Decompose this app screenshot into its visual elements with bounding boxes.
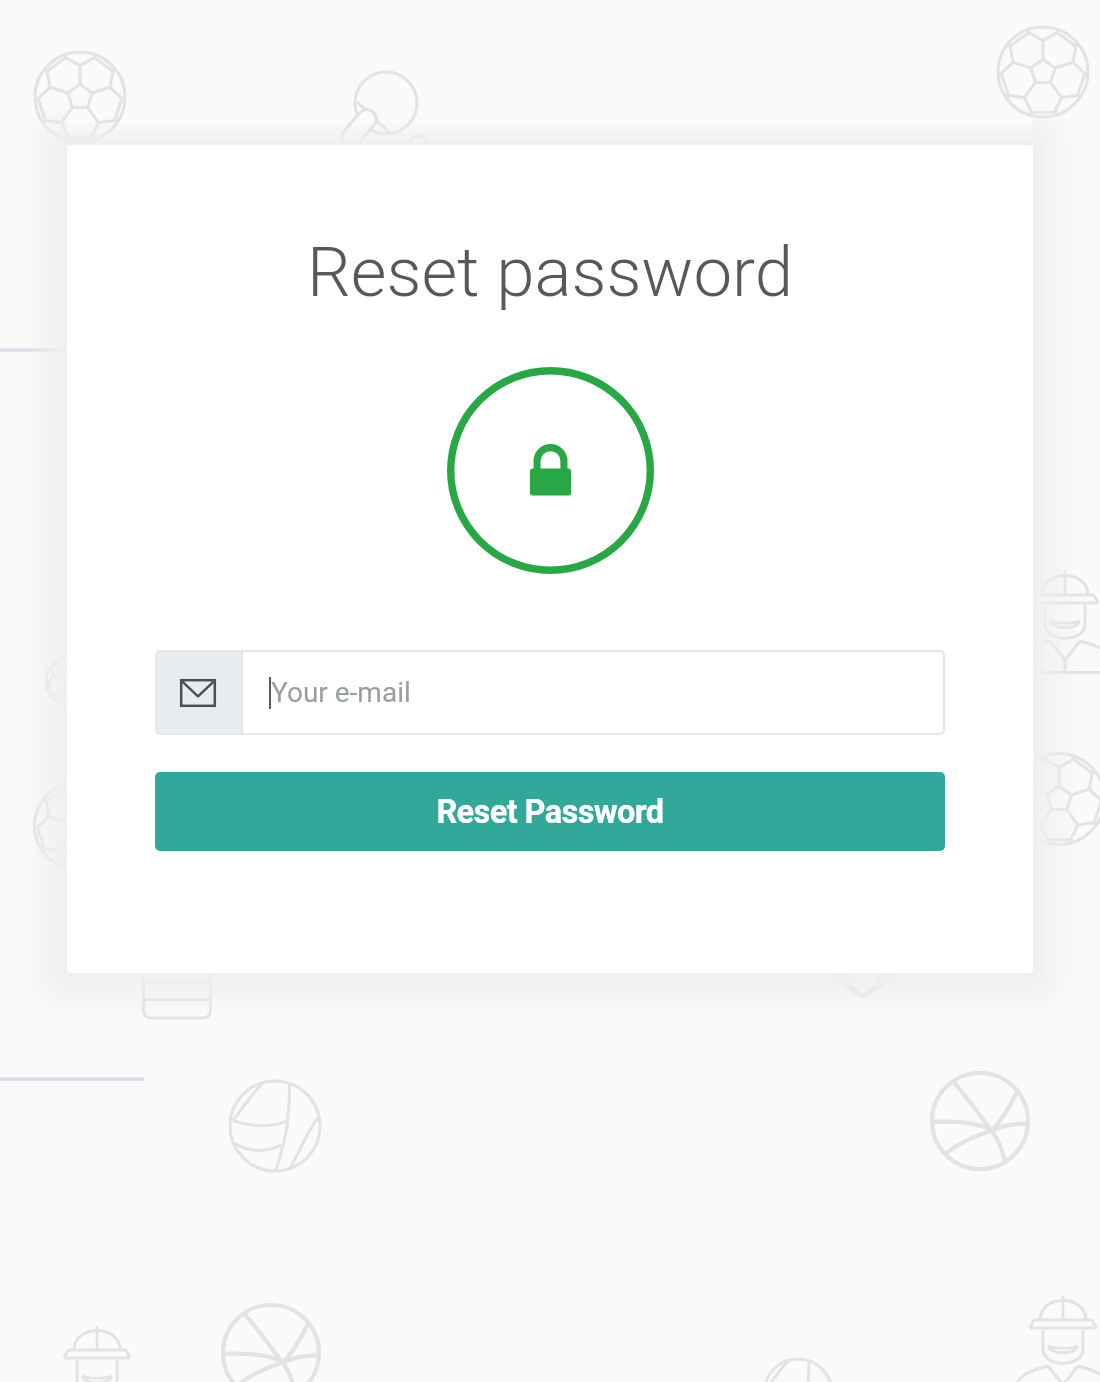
staticText: Your e-mail bbox=[271, 676, 411, 709]
button[interactable]: Reset Password bbox=[155, 772, 945, 851]
staticText: Reset Password bbox=[436, 793, 664, 831]
button[interactable]: E-mail bbox=[155, 650, 945, 735]
other: E-mail bbox=[155, 650, 241, 735]
staticText: Reset password bbox=[307, 232, 794, 313]
